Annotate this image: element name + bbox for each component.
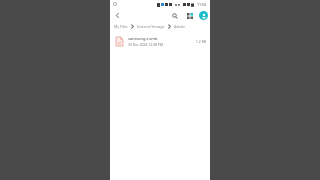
button[interactable]: Change view: [184, 10, 195, 21]
button[interactable]: Internal Storage: [136, 23, 166, 30]
staticText: 11:50: [197, 2, 207, 7]
button[interactable]: Account: [199, 11, 208, 20]
button[interactable]: Back: [112, 10, 123, 21]
button[interactable]: Search: [169, 10, 180, 21]
staticText: Internal Storage: [137, 24, 165, 29]
button[interactable]: samsung-t.smb: [110, 34, 210, 49]
staticText: samsung-t.smb: [128, 36, 158, 41]
staticText: 1.2 KB: [196, 39, 206, 44]
staticText: Adobe: [174, 24, 185, 29]
staticText: My Files: [114, 24, 128, 29]
button[interactable]: Adobe: [173, 23, 186, 30]
button[interactable]: My Files: [113, 23, 129, 30]
staticText: 30 Dec 2024 12:38 PM: [128, 42, 163, 47]
